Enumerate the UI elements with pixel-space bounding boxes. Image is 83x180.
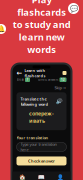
staticText: 📖 — [38, 174, 45, 180]
staticText: 💬 — [69, 5, 77, 12]
button[interactable]: 👤 — [51, 173, 70, 180]
staticText: Learn with flashcards — [24, 68, 45, 78]
staticText: сопереживать — [29, 110, 54, 124]
button[interactable]: ← — [12, 68, 70, 77]
staticText: 🔊 — [55, 99, 62, 105]
button[interactable]: Type your translation here — [16, 142, 66, 151]
staticText: Translate the following word — [20, 96, 48, 107]
button[interactable]: Play pronunciation — [55, 99, 62, 105]
button[interactable]: 📖 — [32, 173, 51, 180]
staticText: correct answers — [38, 78, 58, 81]
button[interactable]: Check answer — [16, 156, 66, 165]
button[interactable]: Skip → — [54, 85, 65, 90]
staticText: Your translation — [16, 135, 48, 140]
staticText: Check answer — [28, 158, 55, 164]
staticText: Type your translation here — [20, 142, 56, 152]
staticText: Play flashcards to study and learn new w… — [12, 0, 70, 55]
button[interactable]: 🏠 — [13, 173, 32, 180]
staticText: 7 — [26, 78, 28, 81]
staticText: 12 — [61, 78, 65, 81]
staticText: 🔔 — [0, 25, 5, 33]
staticText: streak — [16, 78, 23, 81]
staticText: ← — [16, 69, 22, 77]
staticText: 👤 — [57, 174, 64, 180]
staticText: 🏠 — [19, 174, 26, 180]
staticText: Skip → — [54, 85, 65, 90]
